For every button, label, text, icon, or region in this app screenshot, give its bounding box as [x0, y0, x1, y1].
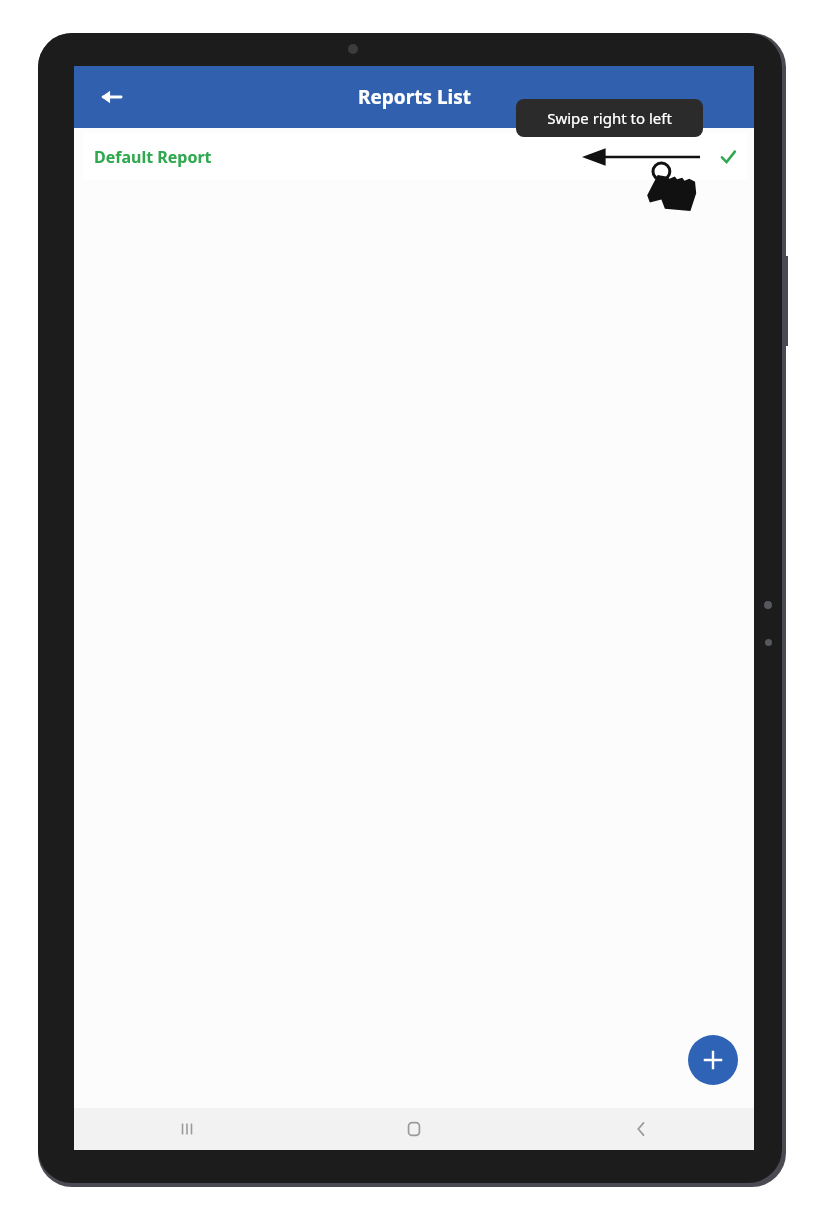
button[interactable]: Back	[88, 73, 136, 121]
button[interactable]: Default Report	[82, 133, 747, 180]
button[interactable]: Add report	[688, 1035, 738, 1085]
staticText: Default Report	[94, 146, 212, 168]
button[interactable]: Home	[300, 1108, 527, 1150]
button[interactable]: Recents	[74, 1108, 300, 1150]
staticText: Reports List	[358, 84, 471, 110]
staticText: Swipe right to left	[547, 108, 672, 128]
button[interactable]: Back	[527, 1108, 754, 1150]
